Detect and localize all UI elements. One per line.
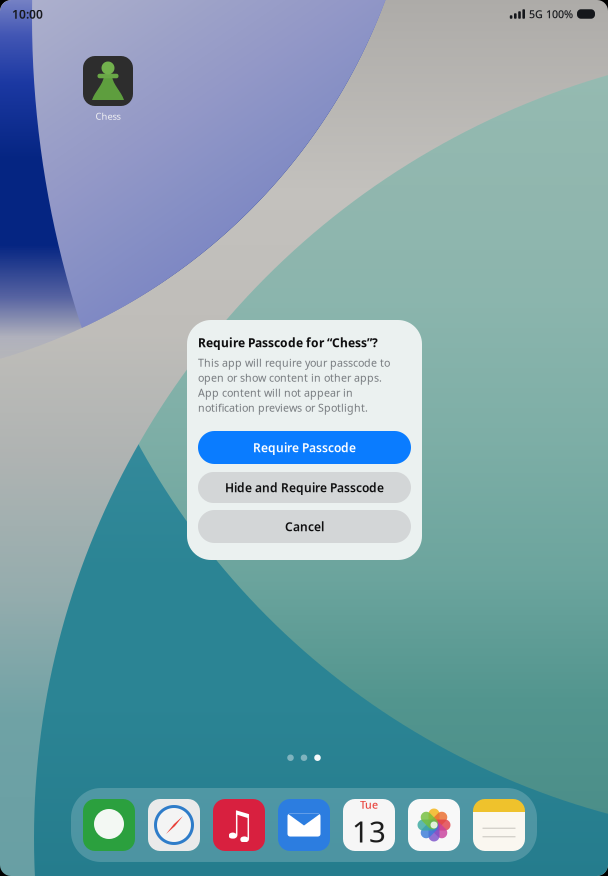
button[interactable]: Photos	[408, 799, 460, 851]
button[interactable]: Safari	[148, 799, 200, 851]
staticText: Tue	[360, 797, 378, 812]
staticText: notification previews or Spotlight.	[198, 400, 368, 415]
button[interactable]: Mail	[278, 799, 330, 851]
staticText: 5G 100%	[526, 7, 573, 21]
staticText: 10:00	[12, 6, 43, 22]
staticText: This app will require your passcode to	[198, 355, 390, 370]
button[interactable]: Cancel	[198, 510, 411, 543]
staticText: Require Passcode for “Chess”?	[198, 334, 378, 350]
staticText: Cancel	[285, 518, 324, 534]
staticText: App content will not appear in	[198, 385, 353, 400]
button[interactable]: Calendar	[343, 799, 395, 851]
button[interactable]: Chess	[83, 56, 133, 122]
staticText: Require Passcode	[253, 439, 356, 455]
button[interactable]: Music	[213, 799, 265, 851]
staticText: Hide and Require Passcode	[225, 479, 384, 495]
staticText: open or show content in other apps.	[198, 370, 382, 385]
button[interactable]: Require Passcode	[198, 431, 411, 464]
button[interactable]: Hide and Require Passcode	[198, 472, 411, 503]
button[interactable]: Messages	[83, 799, 135, 851]
staticText: Chess	[95, 110, 120, 122]
staticText: ♫	[221, 803, 256, 847]
button[interactable]: Notes	[473, 799, 525, 851]
staticText: 13	[352, 812, 386, 851]
